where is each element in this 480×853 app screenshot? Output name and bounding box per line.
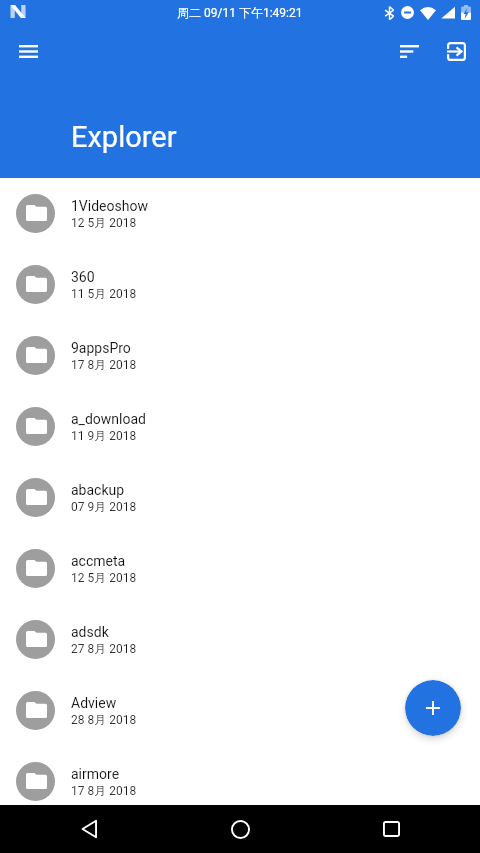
staticText: adsdk	[71, 624, 109, 640]
staticText: 07 9月 2018	[71, 499, 137, 514]
button[interactable]: Menu	[8, 31, 48, 71]
staticText: a_download	[71, 411, 146, 427]
staticText: 17 8月 2018	[71, 783, 137, 798]
staticText: airmore	[71, 766, 120, 782]
button[interactable]: abackup	[0, 462, 480, 533]
button[interactable]: 9appsPro	[0, 320, 480, 391]
button[interactable]: Exit	[436, 31, 476, 71]
button[interactable]: 1Videoshow	[0, 178, 480, 249]
button[interactable]: a_download	[0, 391, 480, 462]
staticText: 27 8月 2018	[71, 641, 137, 656]
staticText: accmeta	[71, 553, 126, 569]
staticText: 17 8月 2018	[71, 357, 137, 372]
staticText: Adview	[71, 695, 117, 711]
staticText: 12 5月 2018	[71, 570, 137, 585]
button[interactable]: airmore	[0, 746, 480, 817]
staticText: 周二 09/11 下午1:49:21	[177, 5, 303, 20]
button[interactable]: Recents	[367, 805, 415, 853]
staticText: 1Videoshow	[71, 198, 148, 214]
button[interactable]: Back	[65, 805, 113, 853]
staticText: Explorer	[71, 120, 177, 154]
staticText: 11 9月 2018	[71, 428, 137, 443]
button[interactable]: Add	[405, 680, 461, 736]
staticText: 360	[71, 269, 95, 285]
button[interactable]: accmeta	[0, 533, 480, 604]
button[interactable]: adsdk	[0, 604, 480, 675]
button[interactable]: Sort	[389, 31, 429, 71]
button[interactable]: 360	[0, 249, 480, 320]
staticText: 28 8月 2018	[71, 712, 137, 727]
button[interactable]: Home	[216, 805, 264, 853]
staticText: 9appsPro	[71, 340, 131, 356]
staticText: 11 5月 2018	[71, 286, 137, 301]
staticText: 12 5月 2018	[71, 215, 137, 230]
button[interactable]: Adview	[0, 675, 480, 746]
staticText: abackup	[71, 482, 125, 498]
